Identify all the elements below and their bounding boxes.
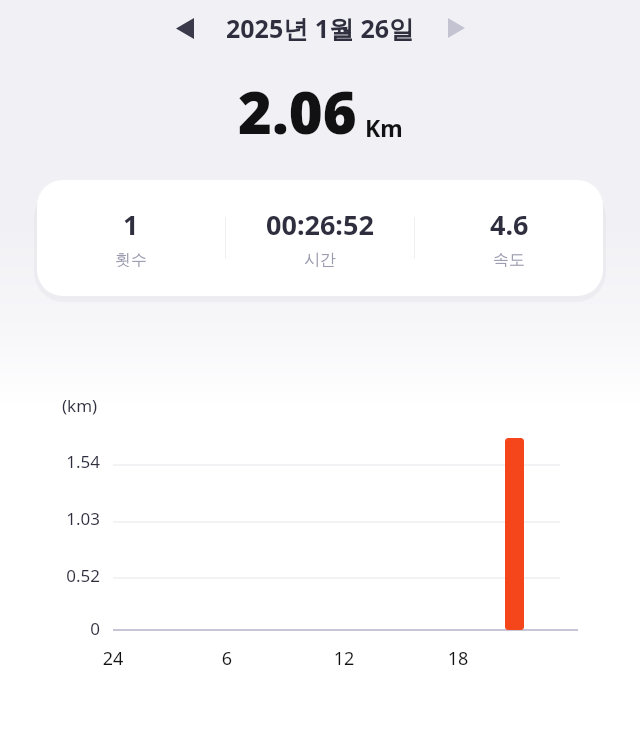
button[interactable]: Previous day <box>164 7 206 49</box>
staticText: (km) <box>62 394 98 417</box>
button[interactable]: Next day <box>435 7 477 49</box>
button[interactable]: 1 <box>37 206 225 270</box>
button[interactable]: 1 <box>37 180 603 296</box>
staticText: 1.03 <box>20 507 100 530</box>
staticText: 12 <box>314 646 374 671</box>
staticText: 2025년 1월 26일 <box>226 11 415 45</box>
staticText: 1 <box>123 206 139 243</box>
staticText: 시간 <box>304 250 336 270</box>
button[interactable]: 4.6 <box>415 206 603 270</box>
staticText: 6 <box>197 646 257 671</box>
staticText: 4.6 <box>490 206 529 243</box>
staticText: 18 <box>428 646 488 671</box>
button[interactable]: 00:26:52 <box>226 206 414 270</box>
staticText: 횟수 <box>115 250 147 270</box>
staticText: 속도 <box>493 250 525 270</box>
staticText: 1.54 <box>20 450 100 473</box>
staticText: 00:26:52 <box>266 206 374 243</box>
staticText: Km <box>365 112 403 143</box>
staticText: 24 <box>83 646 143 671</box>
staticText: 0 <box>20 617 100 640</box>
staticText: 0.52 <box>20 564 100 587</box>
staticText: 2.06 <box>238 72 357 151</box>
